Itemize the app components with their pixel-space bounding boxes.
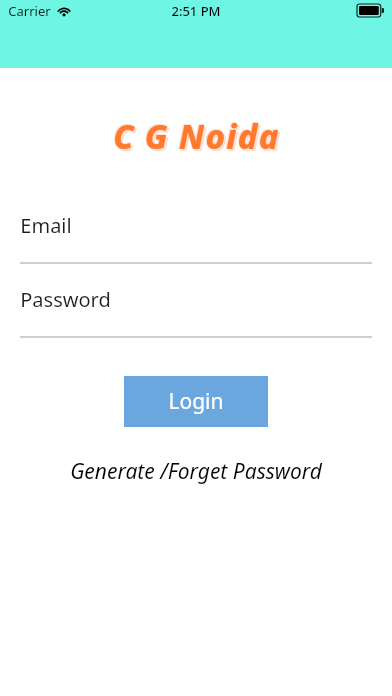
staticText: C G Noida [115, 116, 282, 160]
staticText: 2:51 PM [171, 2, 221, 20]
staticText: Email [20, 212, 72, 239]
staticText: Login [168, 387, 224, 416]
button[interactable]: Email [0, 206, 392, 264]
button[interactable]: Password [0, 280, 392, 338]
staticText: Generate /Forget Password [70, 457, 322, 486]
staticText: C G Noida [112, 113, 279, 157]
staticText: Carrier [8, 2, 51, 20]
staticText: C G Noida [113, 114, 280, 158]
button[interactable]: Login [124, 376, 268, 427]
button[interactable]: Generate /Forget Password [0, 457, 392, 486]
staticText: Password [20, 286, 111, 313]
